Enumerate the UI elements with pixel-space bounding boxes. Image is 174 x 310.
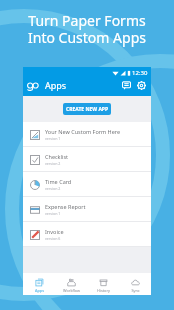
staticText: Your New Custom Form Here — [45, 128, 121, 135]
staticText: version 1 — [45, 211, 61, 216]
button[interactable]: Sync — [119, 275, 151, 293]
button[interactable]: Expense Report — [23, 197, 151, 222]
staticText: 12:30 — [132, 69, 148, 77]
staticText: Expense Report — [45, 203, 86, 210]
staticText: Apps — [45, 79, 67, 91]
button[interactable]: Your New Custom Form Here — [23, 122, 151, 147]
staticText: version 2 — [45, 186, 61, 191]
staticText: version 6 — [45, 236, 61, 241]
button[interactable]: History — [87, 275, 119, 293]
staticText: Checklist — [45, 153, 69, 160]
staticText: Time Card — [45, 178, 72, 185]
button[interactable]: Time Card — [23, 172, 151, 197]
button[interactable]: Messages — [119, 78, 133, 92]
staticText: Turn Paper Forms Into Custom Apps — [28, 11, 146, 47]
staticText: CREATE NEW APP — [66, 106, 109, 113]
staticText: Apps — [35, 288, 44, 293]
staticText: Sync — [131, 288, 140, 293]
button[interactable]: CREATE NEW APP — [63, 103, 111, 115]
staticText: version 2 — [45, 161, 61, 166]
staticText: Workflow — [63, 288, 80, 293]
button[interactable]: Invoice — [23, 222, 151, 247]
button[interactable]: Settings — [134, 78, 148, 92]
button[interactable]: Apps — [23, 275, 55, 293]
staticText: Invoice — [45, 228, 64, 235]
button[interactable]: Checklist — [23, 147, 151, 172]
staticText: History — [97, 288, 110, 293]
staticText: version 1 — [45, 136, 61, 141]
button[interactable]: Workflow — [55, 275, 87, 293]
